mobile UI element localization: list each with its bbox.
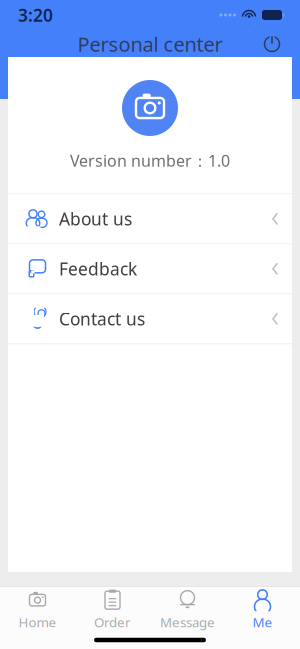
button[interactable]: Me	[225, 583, 300, 635]
staticText: About us	[59, 207, 132, 230]
staticText: Order	[94, 613, 131, 631]
button[interactable]: Message	[150, 583, 225, 635]
staticText: Personal center	[77, 31, 222, 57]
staticText: Version number：1.0	[70, 150, 230, 171]
button[interactable]: Feedback	[8, 244, 292, 293]
staticText: Home	[18, 613, 56, 631]
button[interactable]: Contact us	[8, 294, 292, 343]
button[interactable]: Order	[75, 583, 150, 635]
staticText: Me	[252, 613, 272, 631]
button[interactable]: Log out	[256, 28, 288, 60]
button[interactable]: About us	[8, 194, 292, 243]
staticText: 3:20	[18, 3, 53, 26]
staticText: Feedback	[59, 257, 137, 280]
button[interactable]: Home	[0, 583, 75, 635]
staticText: Contact us	[59, 307, 145, 330]
staticText: Message	[160, 613, 215, 631]
